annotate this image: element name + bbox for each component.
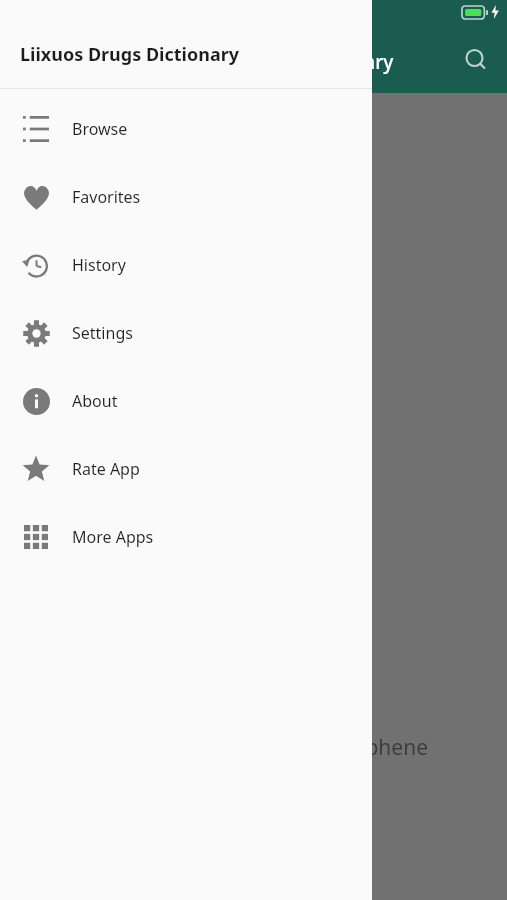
staticText: Dictionary [300,49,394,75]
staticText: Favorites [72,186,141,208]
button[interactable]: Settings [0,299,372,367]
button[interactable]: Rate App [0,435,372,503]
button[interactable]: History [0,231,372,299]
button[interactable]: Search [452,36,500,84]
button[interactable]: Browse [0,95,372,163]
staticText: Browse [72,118,128,140]
button[interactable]: More Apps [0,503,372,571]
staticText: Acetaminophene [260,733,428,762]
button[interactable]: About [0,367,372,435]
staticText: Acetaminophene [260,733,428,762]
staticText: Rate App [72,458,140,480]
staticText: About [72,390,118,412]
staticText: Settings [72,322,133,344]
staticText: Liixuos Drugs Dictionary [20,42,240,67]
staticText: History [72,254,126,276]
button[interactable]: Favorites [0,163,372,231]
staticText: More Apps [72,526,154,548]
